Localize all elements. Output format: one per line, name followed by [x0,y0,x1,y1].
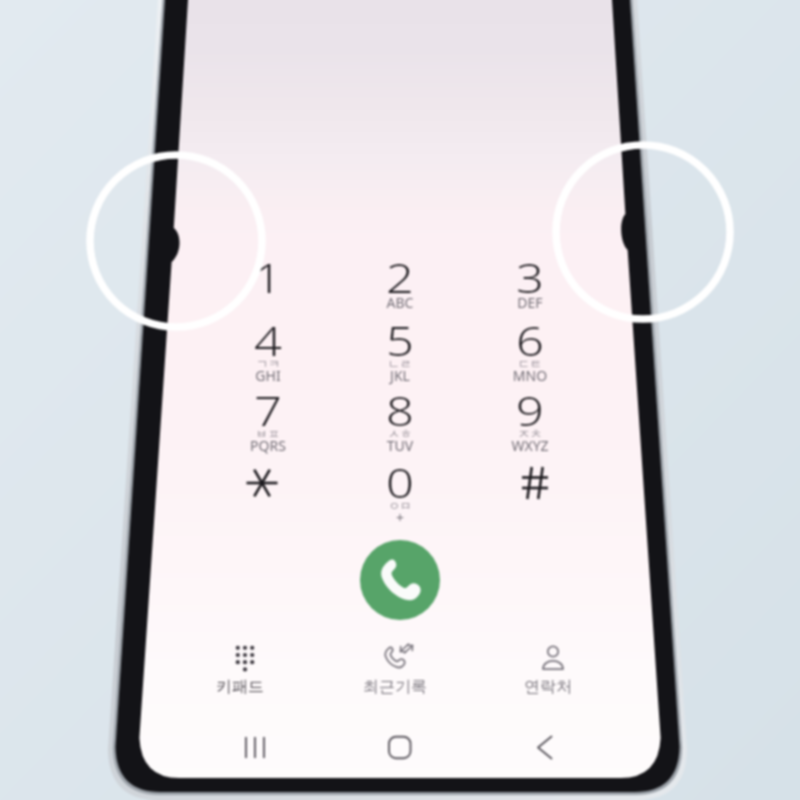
staticText: ABC [337,293,463,321]
staticText: 4 [191,313,345,393]
staticText: MNO [467,366,593,394]
button[interactable]: 6 [455,307,605,387]
staticText: 최근기록 [337,677,453,709]
button[interactable]: 4 [193,307,343,387]
staticText: 5 [323,313,477,393]
staticText: ㄷㅌ [467,356,593,380]
button[interactable]: 2 [325,244,475,324]
button[interactable]: Call [359,539,441,621]
button[interactable]: 3 [455,244,605,324]
button[interactable]: 8 [325,377,475,457]
button[interactable] [455,449,605,529]
button[interactable] [193,449,343,529]
staticText: 연락처 [490,677,606,709]
button[interactable]: 연락처 [495,632,611,700]
staticText: DEF [467,293,593,321]
button[interactable]: 5 [325,307,475,387]
staticText: ㄱㅋ [205,356,331,380]
staticText: ㅇㅁ [337,498,463,522]
staticText: 9 [453,383,607,463]
staticText: 3 [453,250,607,330]
staticText: ㄴㄹ [337,356,463,380]
staticText: ㅂㅍ [205,426,331,450]
button[interactable]: 0 [325,449,475,529]
button[interactable]: 최근기록 [342,632,458,700]
staticText: 키패드 [182,677,298,709]
button[interactable]: 1 [193,244,343,324]
staticText: GHI [205,366,331,394]
staticText: 1 [191,250,345,330]
staticText: 8 [323,383,477,463]
button[interactable]: 키패드 [187,632,303,700]
staticText: ㅅㅎ [337,426,463,450]
button[interactable]: 7 [193,377,343,457]
staticText: PQRS [205,436,331,464]
staticText: 0 [323,455,477,535]
staticText: + [337,508,463,536]
button[interactable]: 9 [455,377,605,457]
staticText: JKL [337,366,463,394]
staticText: 7 [191,383,345,463]
staticText: WXYZ [467,436,593,464]
staticText: 6 [453,313,607,393]
staticText: TUV [337,436,463,464]
staticText: ㅈㅊ [467,426,593,450]
staticText: 2 [323,250,477,330]
